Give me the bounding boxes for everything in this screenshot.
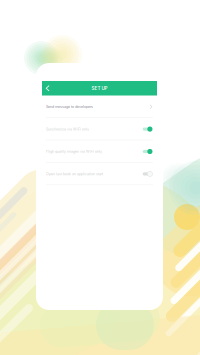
button[interactable]: SET UP: [42, 81, 157, 95]
staticText: High quality images via WiFi only: [46, 149, 102, 154]
staticText: SET UP: [91, 85, 107, 91]
staticText: Synchronize via WiFi only: [46, 127, 89, 131]
staticText: Send message to developers: [46, 104, 93, 109]
button[interactable]: High quality images via WiFi only: [42, 140, 157, 163]
button[interactable]: Open last book on application start: [42, 163, 157, 185]
button[interactable]: Synchronize via WiFi only: [42, 118, 157, 140]
staticText: Open last book on application start: [46, 172, 103, 176]
button[interactable]: Send message to developers: [42, 95, 157, 118]
